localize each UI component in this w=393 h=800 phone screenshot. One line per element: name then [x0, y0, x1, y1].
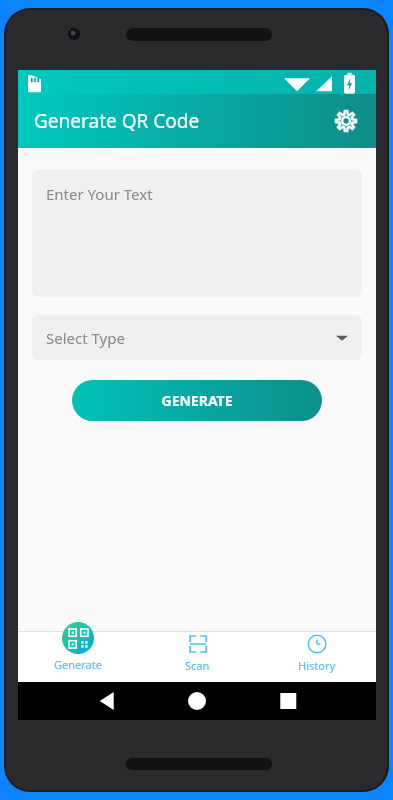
- button[interactable]: Settings: [326, 101, 366, 141]
- button[interactable]: History: [257, 620, 376, 682]
- staticText: Select Type: [46, 328, 125, 348]
- button[interactable]: Scan: [138, 620, 257, 682]
- staticText: Enter Your Text: [46, 184, 153, 204]
- button[interactable]: Select Type: [32, 315, 362, 360]
- button[interactable]: GENERATE: [72, 380, 322, 421]
- staticText: Scan: [185, 658, 210, 673]
- staticText: GENERATE: [161, 391, 233, 410]
- staticText: Generate QR Code: [34, 108, 200, 134]
- button[interactable]: Generate: [18, 620, 138, 682]
- button[interactable]: Enter Your Text: [32, 170, 362, 297]
- staticText: Generate: [54, 657, 102, 672]
- staticText: History: [298, 658, 336, 673]
